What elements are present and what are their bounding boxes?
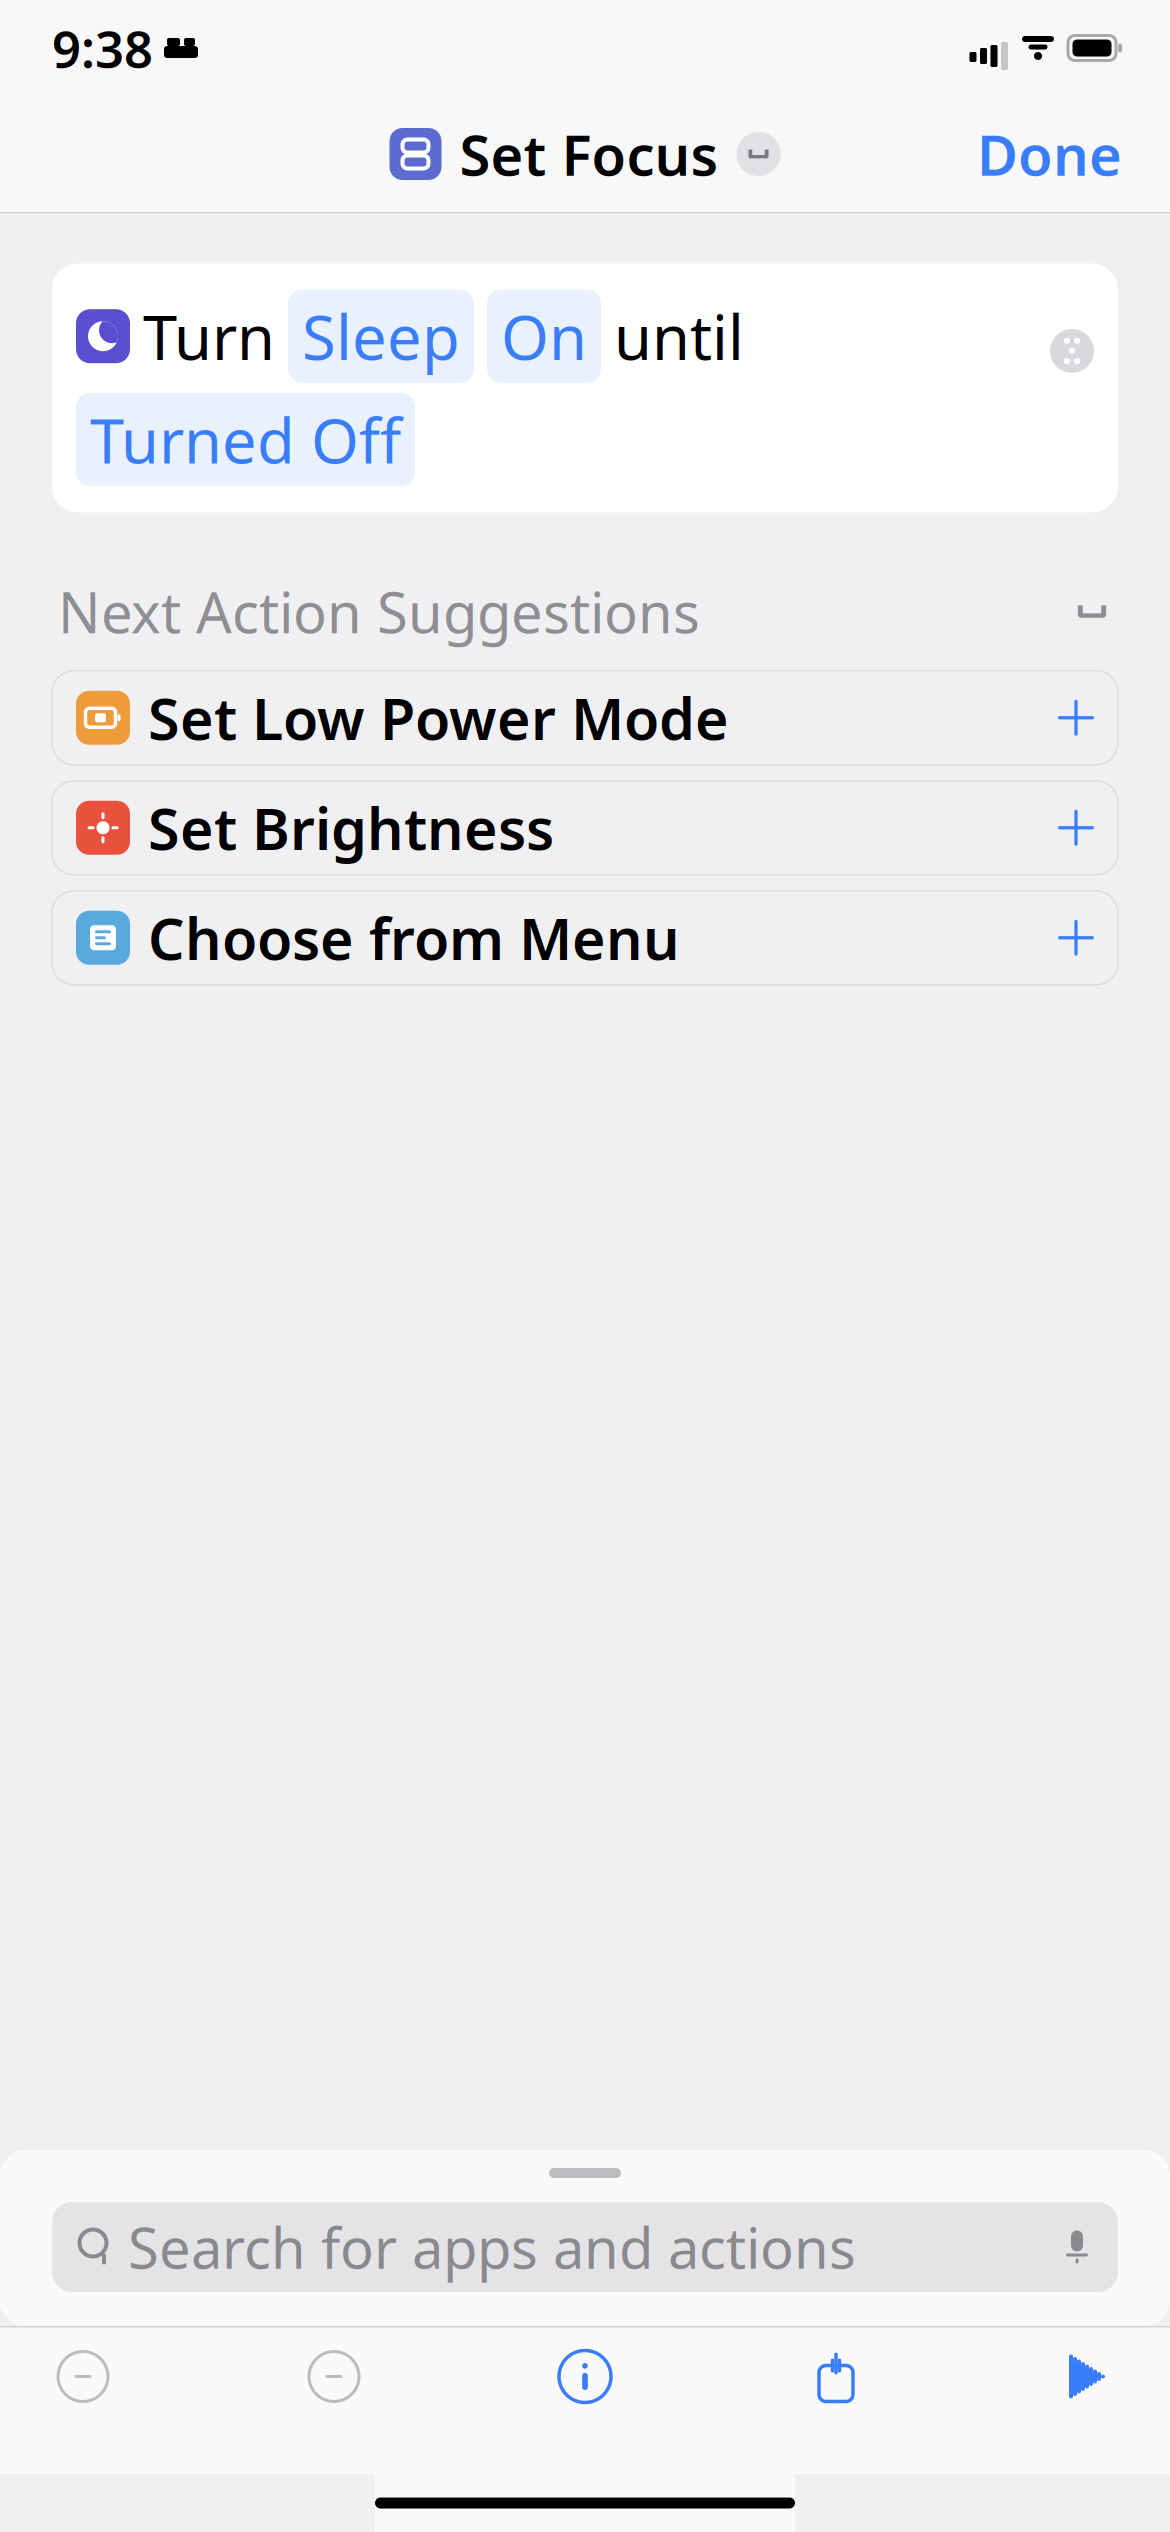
button[interactable]: Turned Off [76,393,415,486]
button[interactable]: Shortcut options [736,132,780,176]
button[interactable]: Set Brightness [52,781,1118,875]
button[interactable]: Run shortcut [1028,2327,1146,2425]
button[interactable]: Share [777,2327,895,2425]
button[interactable]: Redo [275,2327,393,2425]
staticText: until [614,295,744,377]
staticText: Set Focus [459,117,718,191]
button[interactable]: Done [963,107,1136,201]
button[interactable]: Choose from Menu [52,891,1118,985]
staticText: Choose from Menu [148,900,680,976]
button[interactable]: Shortcut details [526,2327,644,2425]
staticText: Turn [143,295,275,377]
button[interactable]: Undo [24,2327,142,2425]
staticText: Turned Off [90,399,401,480]
staticText: Set Low Power Mode [148,680,729,756]
button[interactable]: Shortcut icon [389,128,441,180]
button[interactable]: On [487,289,601,383]
staticText: Set Brightness [148,790,554,866]
staticText: Sleep [302,295,460,377]
staticText: On [501,295,587,377]
staticText: Search for apps and actions [128,2210,856,2284]
button[interactable]: Search for apps and actions [52,2202,1118,2292]
staticText: Next Action Suggestions [58,574,700,649]
button[interactable]: Collapse suggestions [1064,584,1120,640]
button[interactable]: Remove action [1050,329,1094,447]
button[interactable]: Set Low Power Mode [52,671,1118,765]
button[interactable]: Sleep [288,289,474,383]
staticText: 9:38 [52,14,153,82]
staticText: Done [977,117,1122,191]
